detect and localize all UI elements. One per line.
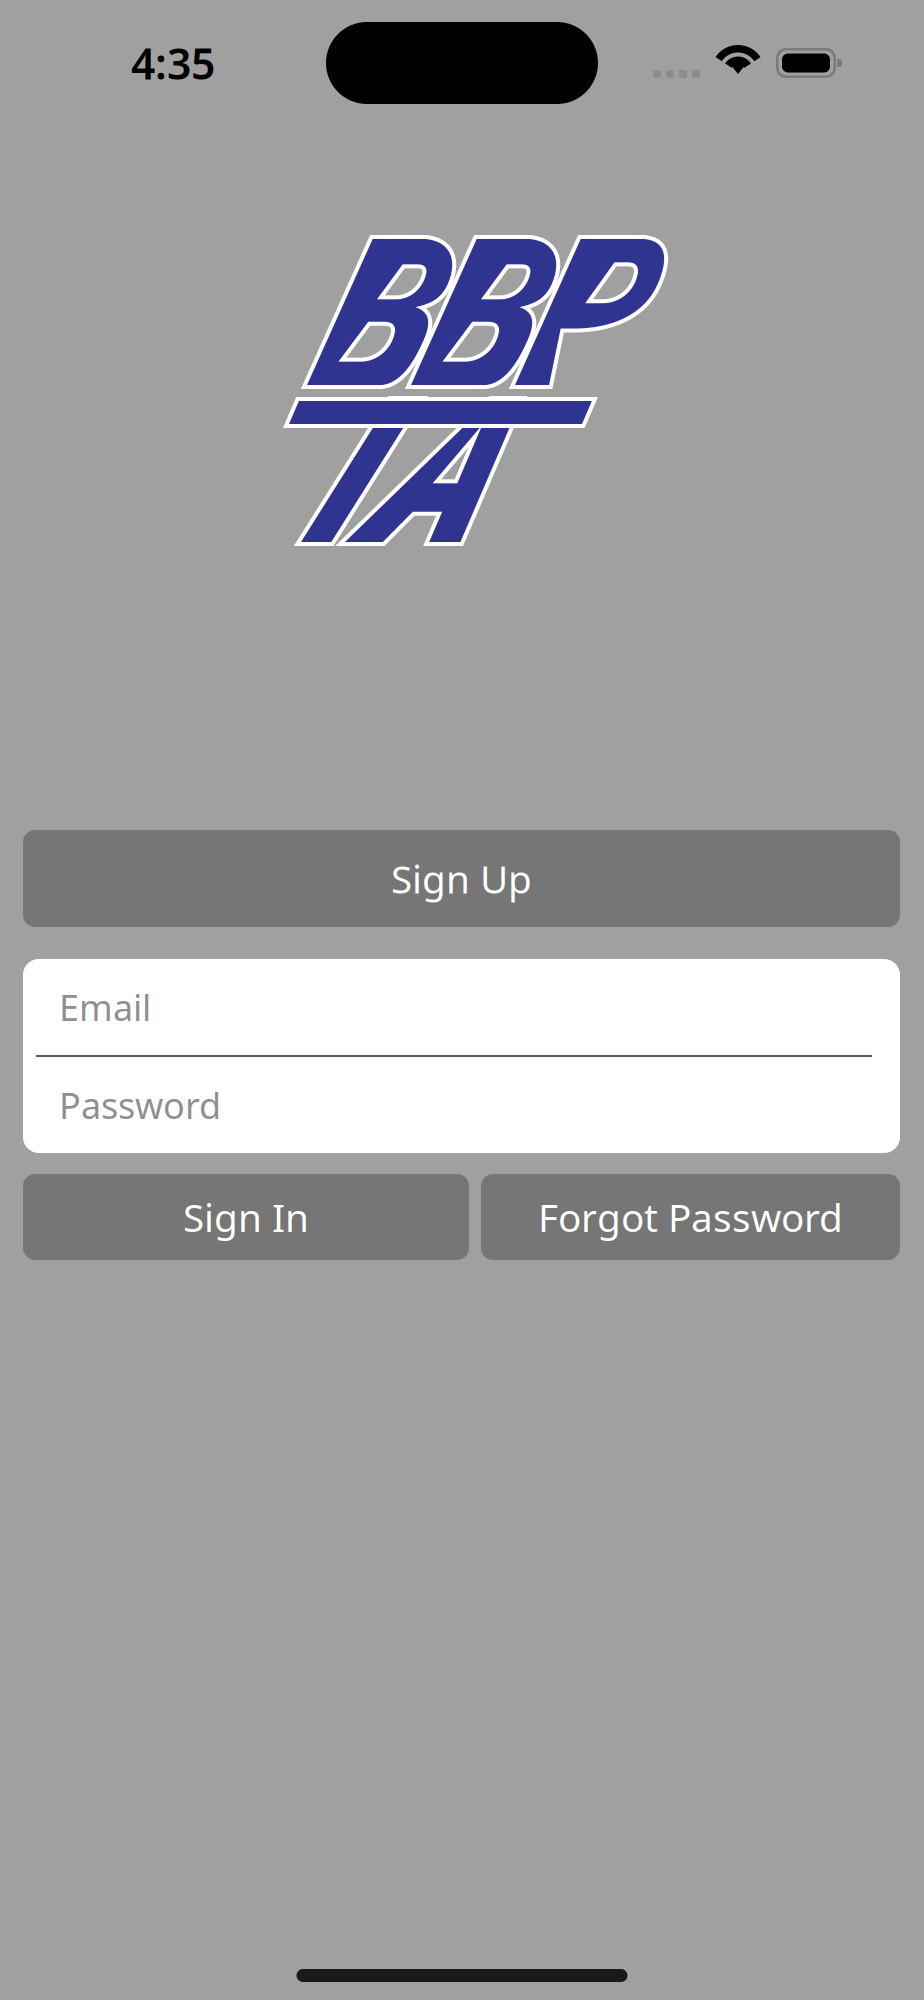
button[interactable]: Forgot Password — [481, 1174, 900, 1260]
staticText: Forgot Password — [538, 1191, 843, 1243]
staticText: Email — [59, 983, 151, 1031]
staticText: 4:35 — [131, 35, 215, 91]
staticText: Sign Up — [391, 853, 532, 904]
button[interactable]: Sign Up — [23, 830, 900, 927]
staticText: Password — [59, 1081, 221, 1129]
button[interactable]: Sign In — [23, 1174, 469, 1260]
staticText: Sign In — [183, 1191, 309, 1243]
